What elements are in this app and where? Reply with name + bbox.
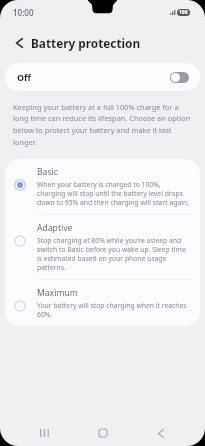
staticText: Maximum	[37, 287, 78, 299]
staticText: Your battery will stop charging when it …	[37, 301, 190, 319]
button[interactable]: Back	[146, 420, 176, 446]
staticText: Adaptive	[37, 222, 73, 234]
button[interactable]: Home	[88, 420, 118, 446]
staticText: Keeping your battery at a full 100% char…	[13, 102, 193, 147]
staticText: Basic	[37, 166, 58, 178]
button[interactable]: Off	[5, 63, 200, 91]
button[interactable]: Basic	[5, 159, 200, 214]
button[interactable]: Recent apps	[29, 420, 59, 446]
button[interactable]: Adaptive	[5, 215, 200, 279]
button[interactable]: Navigate up	[8, 32, 30, 54]
staticText: Battery protection	[31, 35, 141, 51]
staticText: When your battery is charged to 100%, ch…	[37, 180, 190, 207]
staticText: 10:00	[13, 7, 34, 18]
staticText: Stop charging at 80% while you're asleep…	[37, 236, 190, 272]
staticText: Off	[17, 71, 32, 83]
staticText: 100	[179, 9, 188, 16]
button[interactable]: Maximum	[5, 280, 200, 326]
